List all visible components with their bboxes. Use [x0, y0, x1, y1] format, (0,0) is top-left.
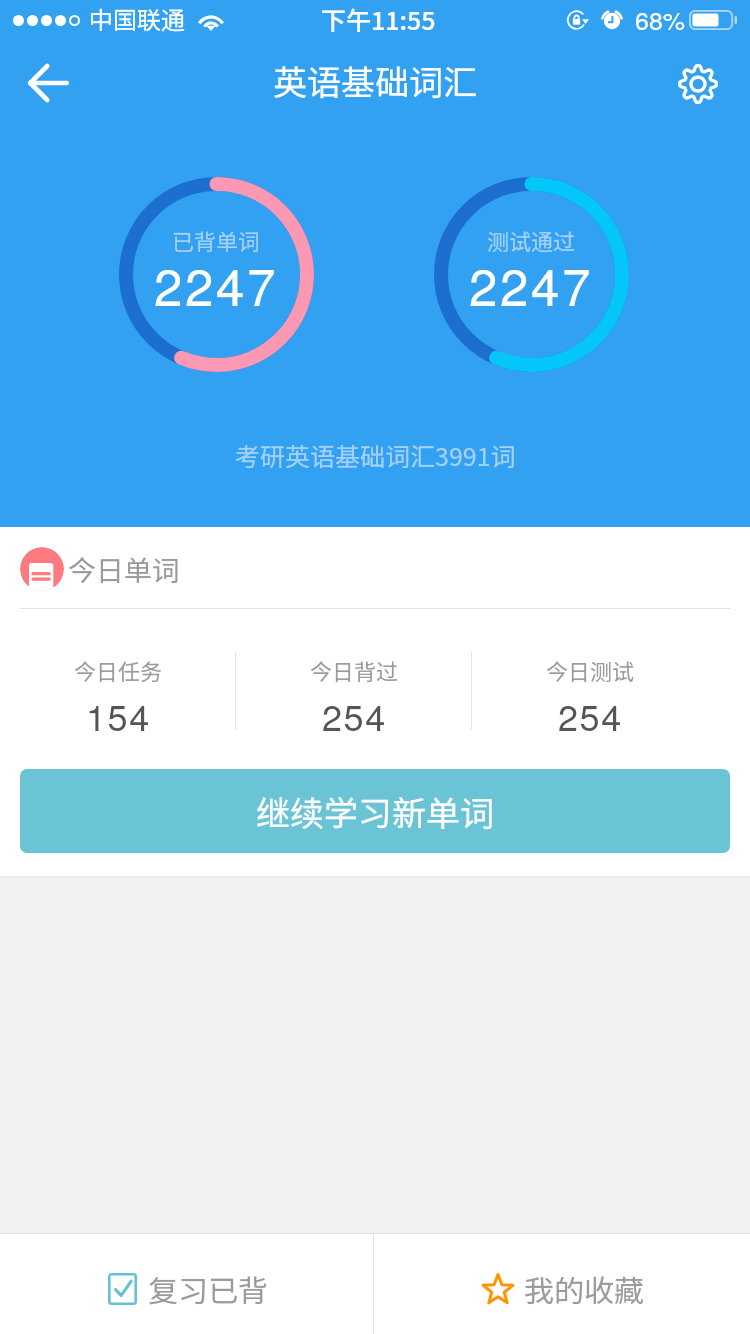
- button[interactable]: 今日任务: [0, 652, 236, 730]
- staticText: 已背单词: [172, 224, 261, 256]
- staticText: 今日任务: [74, 654, 163, 686]
- staticText: 2247: [154, 247, 279, 320]
- button[interactable]: 复习已背: [0, 1238, 375, 1334]
- staticText: 254: [322, 690, 387, 742]
- button[interactable]: 今日测试: [472, 652, 708, 730]
- staticText: 英语基础词汇: [273, 56, 477, 105]
- staticText: 68%: [635, 1, 686, 37]
- staticText: 复习已背: [148, 1267, 268, 1310]
- button[interactable]: 我的收藏: [375, 1238, 750, 1334]
- staticText: 今日背过: [310, 654, 399, 686]
- staticText: 154: [86, 690, 151, 742]
- staticText: 考研英语基础词汇3991词: [235, 437, 516, 473]
- staticText: 测试通过: [487, 224, 576, 256]
- staticText: 下午11:55: [321, 1, 436, 37]
- staticText: 今日测试: [546, 654, 635, 686]
- button[interactable]: Back: [4, 39, 92, 127]
- staticText: 2247: [469, 247, 594, 320]
- button[interactable]: 今日背过: [236, 652, 472, 730]
- staticText: 中国联通: [89, 1, 185, 36]
- staticText: 254: [558, 690, 623, 742]
- button[interactable]: 继续学习新单词: [20, 769, 730, 853]
- button[interactable]: 今日单词: [0, 547, 181, 591]
- button[interactable]: Settings: [654, 40, 742, 128]
- staticText: 继续学习新单词: [256, 787, 494, 836]
- staticText: 我的收藏: [524, 1267, 644, 1310]
- staticText: 今日单词: [68, 549, 181, 590]
